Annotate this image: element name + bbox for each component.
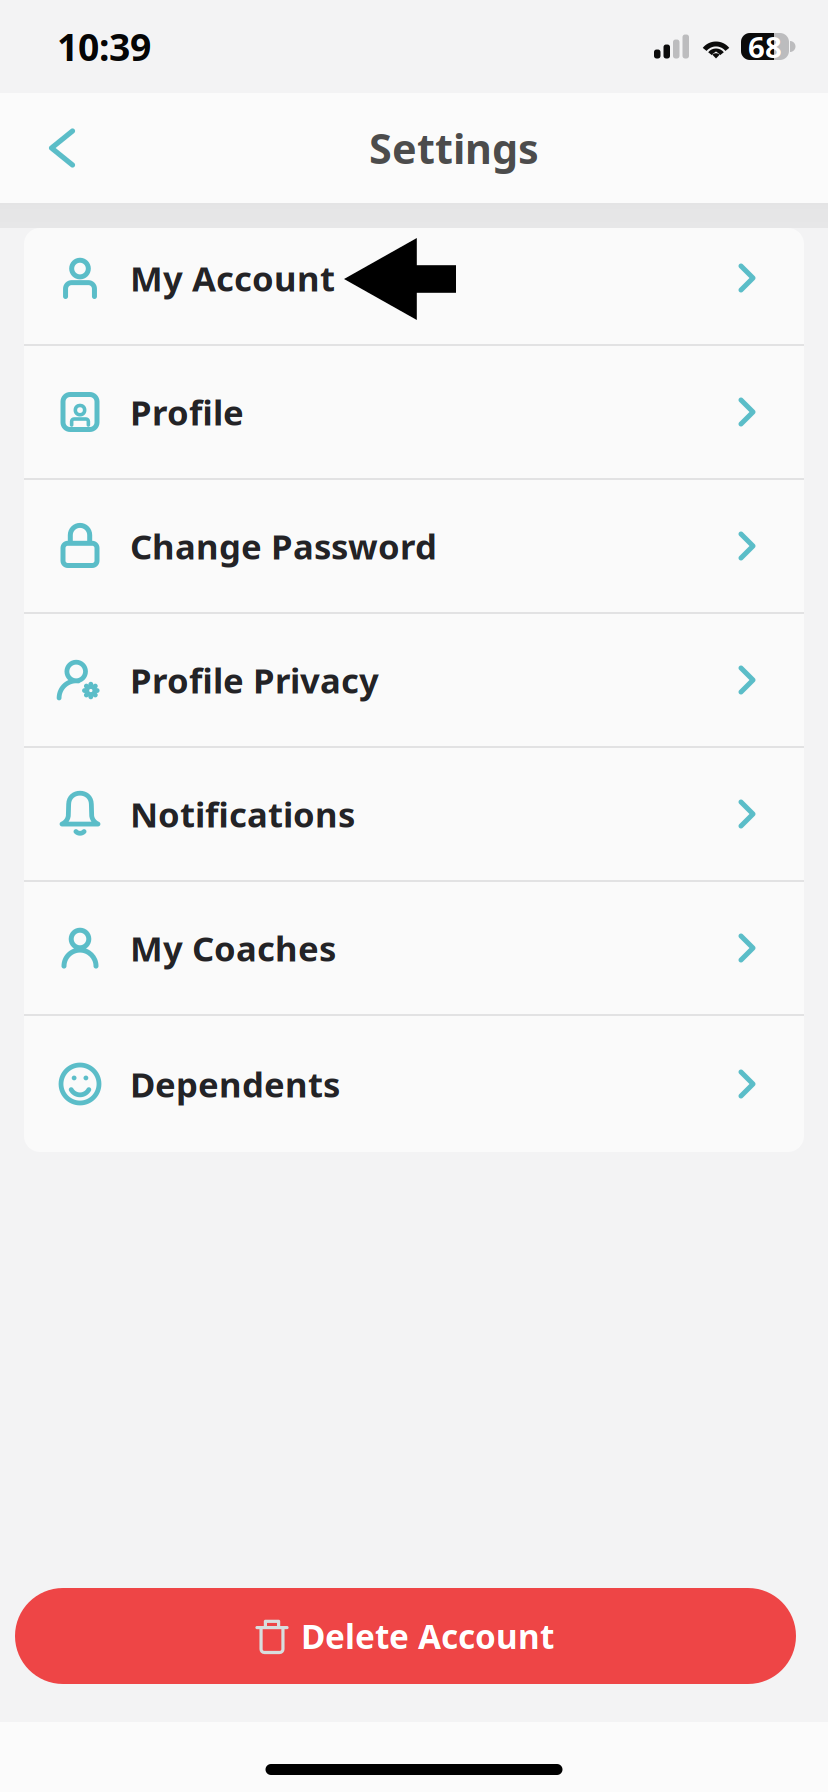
button[interactable]: Delete Account xyxy=(15,1588,796,1684)
button[interactable]: My Account xyxy=(24,228,804,344)
staticText: Settings xyxy=(369,121,539,175)
button[interactable]: Profile xyxy=(24,346,804,478)
button[interactable]: Dependents xyxy=(24,1016,804,1152)
button[interactable]: Back xyxy=(0,93,124,203)
staticText: Dependents xyxy=(130,1061,340,1107)
staticText: My Coaches xyxy=(130,925,336,971)
button[interactable]: My Coaches xyxy=(24,882,804,1014)
staticText: Delete Account xyxy=(301,1614,554,1658)
button[interactable]: Profile Privacy xyxy=(24,614,804,746)
button[interactable]: Notifications xyxy=(24,748,804,880)
staticText: Notifications xyxy=(130,791,355,837)
staticText: Profile xyxy=(130,389,244,435)
staticText: 68 xyxy=(748,27,782,66)
staticText: Change Password xyxy=(130,523,437,569)
staticText: 10:39 xyxy=(57,22,151,71)
button[interactable]: Change Password xyxy=(24,480,804,612)
staticText: Profile Privacy xyxy=(130,657,379,703)
staticText: My Account xyxy=(130,255,335,301)
